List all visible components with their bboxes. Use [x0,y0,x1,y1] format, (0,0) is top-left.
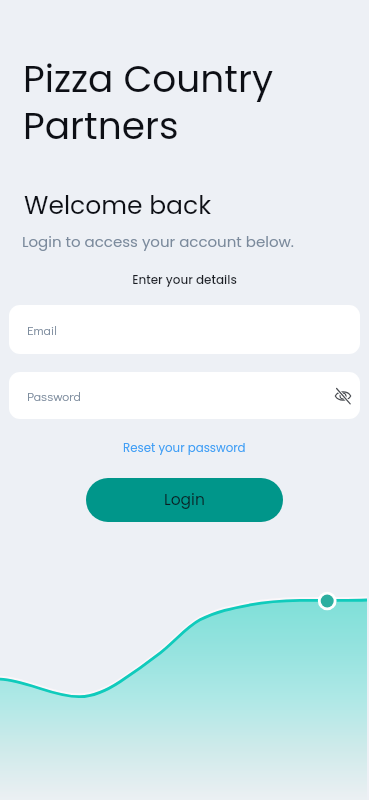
staticText: Login [164,489,205,511]
button[interactable]: Email [9,305,360,354]
button[interactable]: Password [9,372,360,419]
staticText: Welcome back [24,188,212,223]
staticText: Password [27,387,81,404]
staticText: Enter your details [0,271,369,288]
button[interactable]: Login [86,478,283,522]
staticText: Login to access your account below. [22,231,294,252]
staticText: Email [27,321,57,338]
button[interactable]: Show password [326,379,359,412]
staticText: Pizza Country Partners [23,53,274,152]
button[interactable]: Reset your password [123,440,246,457]
